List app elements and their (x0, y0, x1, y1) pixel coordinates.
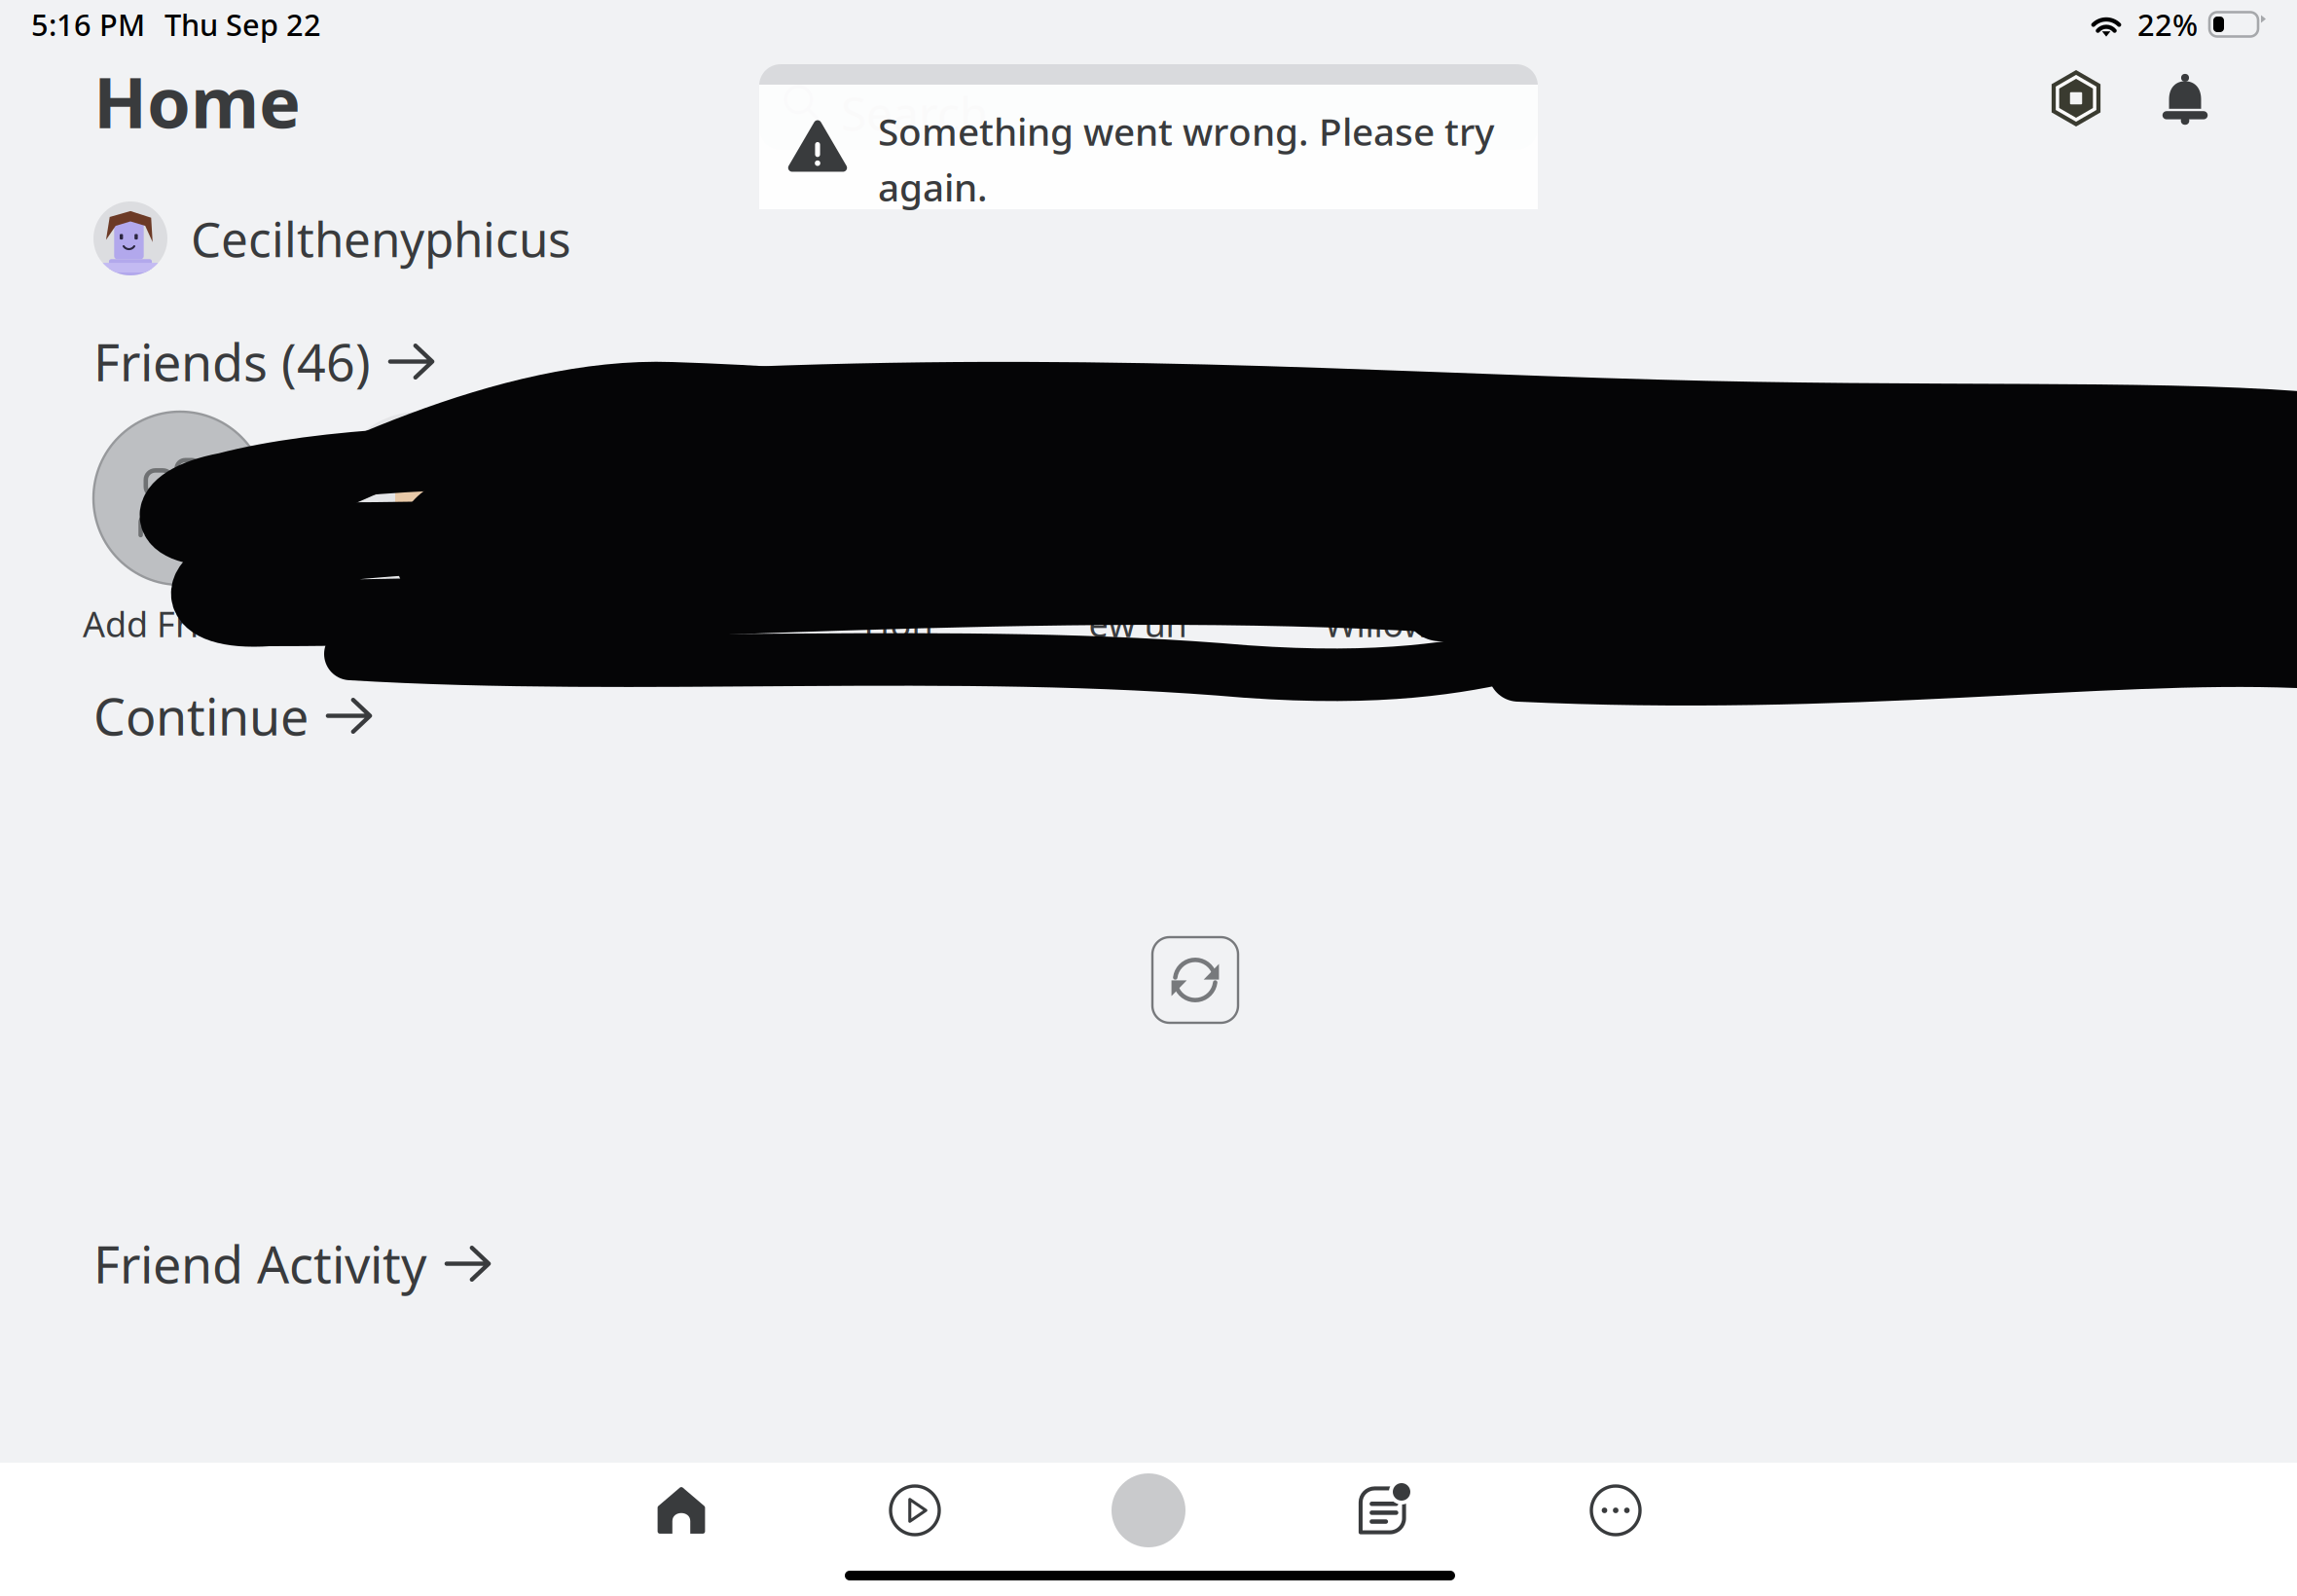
button[interactable]: Cecilthenyphicus (93, 201, 571, 275)
button[interactable]: Willow (1291, 412, 1464, 647)
staticText: ew uh (1089, 600, 1187, 647)
button[interactable]: Home (565, 1463, 798, 1558)
staticText: Home (93, 54, 301, 148)
button[interactable]: Chat (1265, 1463, 1499, 1558)
button[interactable]: Hooh (333, 412, 506, 647)
staticText: Something went wrong. Please try (878, 106, 1494, 156)
staticText: Willow (1324, 600, 1430, 647)
button[interactable]: Robux (2048, 70, 2104, 127)
staticText: Add Friends (83, 600, 277, 647)
button[interactable]: Add Friends (93, 412, 267, 647)
staticText: 22% (2137, 4, 2198, 44)
staticText: Friends (46) (93, 328, 371, 395)
button[interactable]: Friends (46) (93, 328, 435, 395)
staticText: Search (841, 82, 989, 144)
staticText: Cecilthenyphicus (191, 207, 571, 270)
staticText: Hon (864, 600, 933, 647)
button[interactable]: Avatar (1032, 1463, 1265, 1558)
button[interactable]: Continue (93, 682, 373, 749)
button[interactable]: Retry (1152, 937, 1238, 1023)
button[interactable]: ew uh (1051, 412, 1224, 647)
button[interactable]: Hon (812, 412, 985, 647)
staticText: Thu Sep 22 (164, 4, 321, 44)
staticText: Continue (93, 682, 309, 749)
staticText: again. (878, 162, 988, 212)
button[interactable]: More (1499, 1463, 1732, 1558)
button[interactable]: Friend Activity (93, 1230, 492, 1297)
button[interactable]: Search (759, 64, 1538, 150)
button[interactable]: Discover (798, 1463, 1032, 1558)
button[interactable]: Notifications (2159, 72, 2211, 125)
staticText: 5:16 PM (31, 4, 145, 44)
staticText: Friend Activity (93, 1230, 427, 1297)
